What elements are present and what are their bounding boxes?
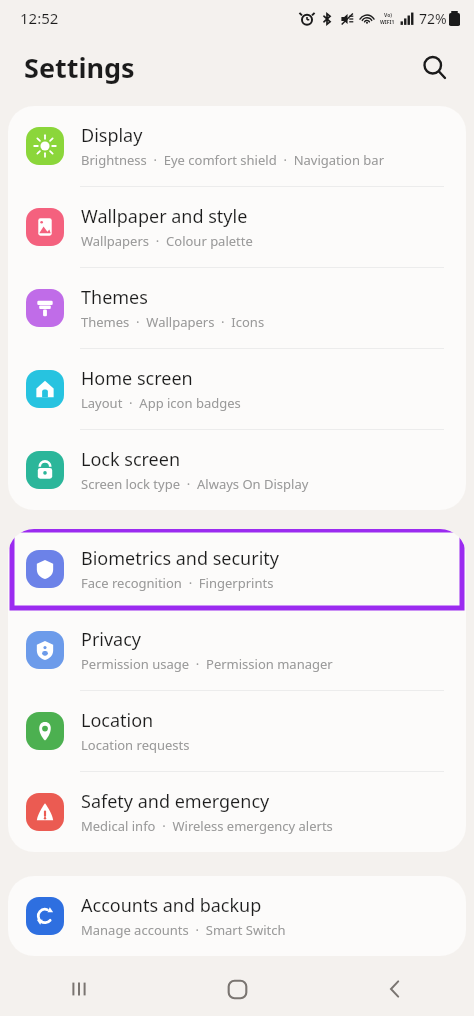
button[interactable]: Themes [8, 268, 466, 348]
staticText: Vo) [384, 12, 392, 19]
staticText: Screen lock type · Always On Display [81, 475, 309, 493]
button[interactable]: Location [8, 691, 466, 771]
staticText: 72% [419, 9, 447, 28]
button[interactable]: Privacy [8, 610, 466, 690]
button[interactable]: Search [410, 43, 458, 91]
staticText: Privacy [81, 627, 142, 652]
staticText: Wallpapers · Colour palette [81, 232, 253, 250]
staticText: Medical info · Wireless emergency alerts [81, 817, 333, 835]
staticText: Accounts and backup [81, 893, 262, 918]
staticText: Home screen [81, 366, 193, 391]
button[interactable]: Biometrics and security [8, 529, 466, 609]
staticText: 12:52 [20, 8, 59, 28]
staticText: Settings [24, 49, 135, 86]
staticText: Permission usage · Permission manager [81, 655, 333, 673]
button[interactable]: Accounts and backup [8, 876, 466, 956]
staticText: Display [81, 123, 143, 148]
staticText: Biometrics and security [81, 546, 279, 571]
staticText: Brightness · Eye comfort shield · Naviga… [81, 151, 385, 169]
button[interactable]: Display [8, 106, 466, 186]
button[interactable]: Recent apps [0, 962, 158, 1016]
button[interactable]: Safety and emergency [8, 772, 466, 852]
staticText: Themes [81, 285, 148, 310]
button[interactable]: Wallpaper and style [8, 187, 466, 267]
button[interactable]: Home [158, 962, 316, 1016]
staticText: Face recognition · Fingerprints [81, 574, 274, 592]
staticText: Wallpaper and style [81, 204, 248, 229]
staticText: Manage accounts · Smart Switch [81, 921, 286, 939]
button[interactable]: Lock screen [8, 430, 466, 510]
button[interactable]: Home screen [8, 349, 466, 429]
staticText: WIFI1 [380, 19, 395, 25]
staticText: Location requests [81, 736, 190, 754]
staticText: Lock screen [81, 447, 181, 472]
staticText: Safety and emergency [81, 789, 270, 814]
staticText: Themes · Wallpapers · Icons [81, 313, 265, 331]
staticText: Layout · App icon badges [81, 394, 241, 412]
staticText: Location [81, 708, 154, 733]
button[interactable]: Back [316, 962, 474, 1016]
